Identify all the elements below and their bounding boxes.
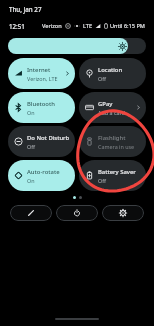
staticText: 12:51 xyxy=(9,22,25,30)
staticText: On xyxy=(27,177,35,184)
button[interactable]: Edit xyxy=(10,205,52,221)
button[interactable]: Location xyxy=(79,58,146,89)
staticText: Off xyxy=(98,75,106,82)
button[interactable]: Battery Saver xyxy=(79,160,146,191)
button[interactable]: Internet xyxy=(8,58,75,89)
staticText: Off xyxy=(98,177,106,184)
staticText: Verizon xyxy=(42,22,62,30)
staticText: GPay xyxy=(98,100,113,108)
button[interactable]: Flashlight xyxy=(79,126,146,157)
staticText: Until 6:15 PM xyxy=(110,22,145,30)
staticText: On xyxy=(27,109,35,116)
button[interactable]: Auto-rotate xyxy=(8,160,75,191)
staticText: Add a card xyxy=(98,109,125,116)
staticText: Off xyxy=(27,143,35,150)
button[interactable]: Do Not Disturb xyxy=(8,126,75,157)
staticText: Verizon, LTE xyxy=(27,75,58,82)
button[interactable]: GPay xyxy=(79,92,146,123)
staticText: Internet xyxy=(27,66,51,74)
button[interactable]: Brightness xyxy=(8,38,146,54)
staticText: Battery Saver xyxy=(98,168,136,176)
staticText: Bluetooth xyxy=(27,100,55,108)
staticText: Flashlight xyxy=(98,134,126,142)
button[interactable]: Bluetooth xyxy=(8,92,75,123)
staticText: Do Not Disturb xyxy=(27,134,70,142)
button[interactable]: Settings xyxy=(102,205,144,221)
button[interactable]: Power xyxy=(56,205,98,221)
staticText: LTE xyxy=(83,22,93,30)
staticText: Thu, Jan 27 xyxy=(9,5,42,13)
staticText: Location xyxy=(98,66,123,74)
staticText: Auto-rotate xyxy=(27,168,60,176)
staticText: Camera in use xyxy=(98,143,135,150)
